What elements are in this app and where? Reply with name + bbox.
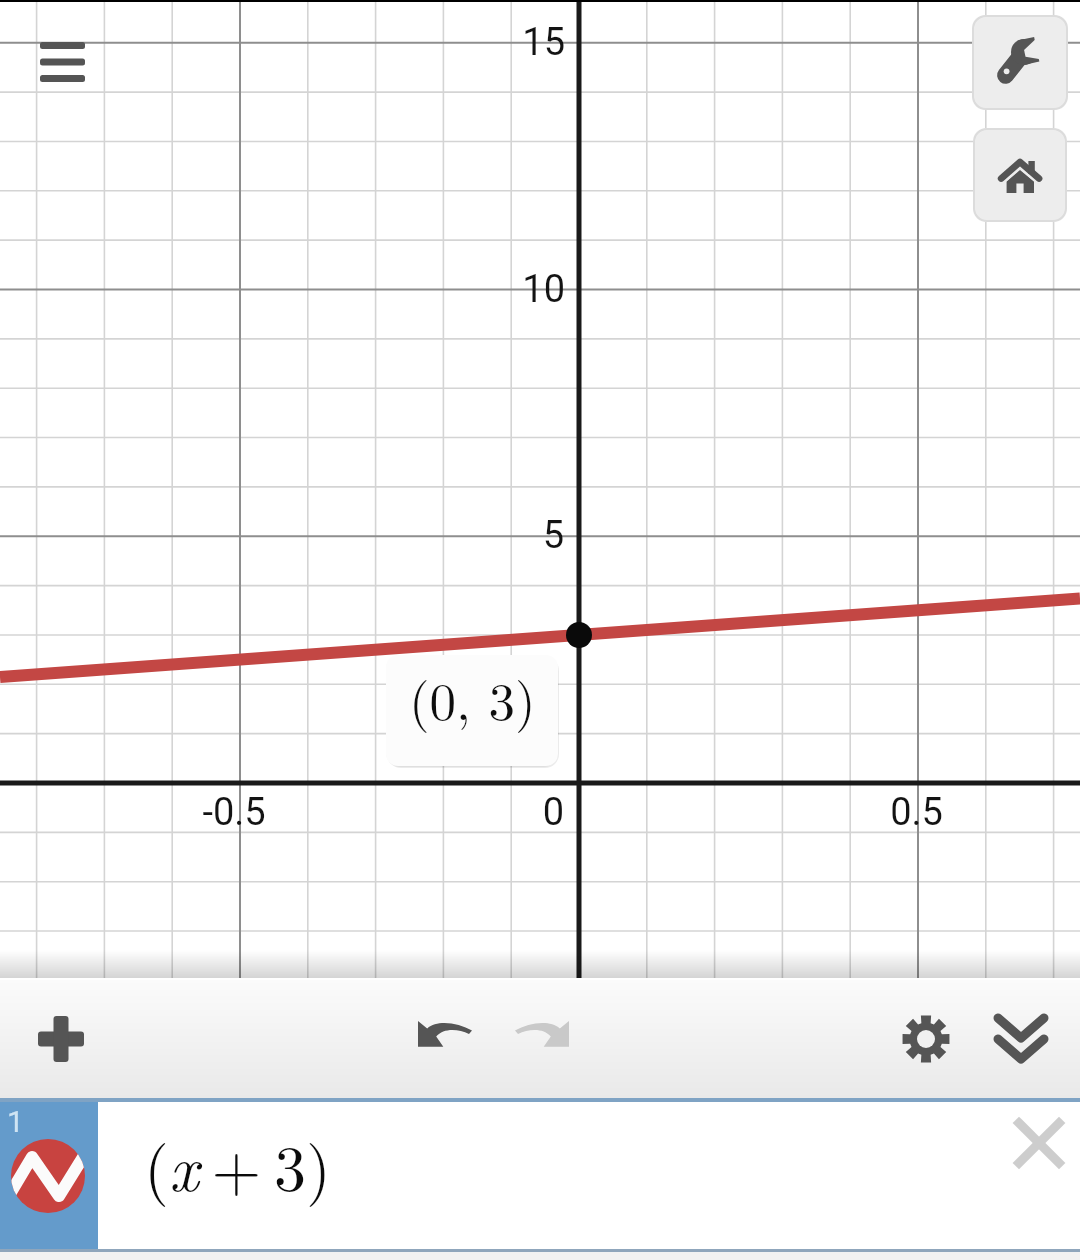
staticText: 0.5 (890, 790, 943, 835)
button[interactable]: Delete expression (999, 1103, 1079, 1183)
button[interactable]: 1 (0, 1102, 98, 1249)
button[interactable]: Add expression (18, 996, 104, 1082)
button[interactable]: Menu (26, 26, 98, 98)
staticText: 1 (7, 1104, 24, 1139)
button[interactable]: (x + 3) (98, 1102, 1080, 1249)
button[interactable]: Settings (883, 996, 969, 1082)
staticText: -0.5 (202, 790, 266, 835)
button[interactable]: Redo (498, 996, 584, 1082)
button[interactable]: Collapse keypad (978, 996, 1064, 1082)
staticText: (x + 3) (144, 1119, 331, 1210)
staticText: (0, 3) (409, 660, 536, 735)
button[interactable]: Home (973, 128, 1067, 222)
staticText: 0 (542, 790, 564, 835)
staticText: 10 (522, 267, 565, 312)
staticText: 5 (542, 513, 564, 558)
staticText: 15 (522, 20, 565, 65)
button[interactable]: Tools (972, 15, 1068, 110)
button[interactable]: Undo (403, 996, 489, 1082)
button[interactable]: (0, 3) (386, 655, 558, 766)
